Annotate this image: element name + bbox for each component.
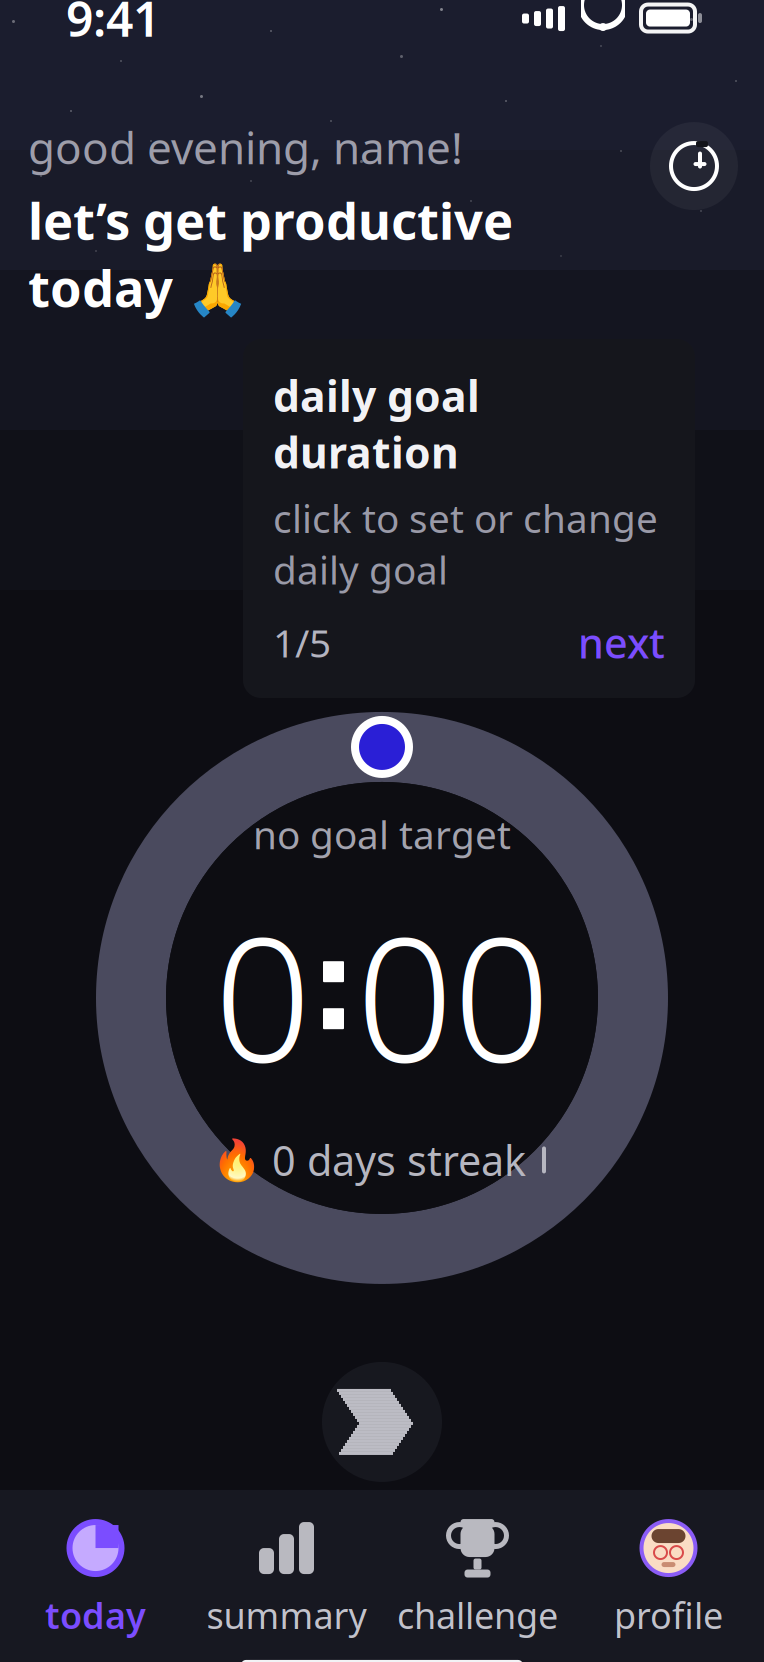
staticText: 9:41 xyxy=(66,0,160,50)
staticText: good evening, name! xyxy=(28,118,463,176)
button[interactable]: profile xyxy=(573,1514,764,1642)
staticText: challenge xyxy=(397,1591,558,1639)
button[interactable]: next xyxy=(578,615,665,670)
staticText: 00 xyxy=(356,882,550,1108)
staticText: next xyxy=(578,615,665,670)
staticText: let’s get productive today 🙏 xyxy=(28,186,513,321)
staticText: no goal target xyxy=(253,808,511,860)
staticText: today xyxy=(45,1591,146,1639)
button[interactable]: Set daily goal duration xyxy=(650,122,738,210)
button[interactable]: 🔥 xyxy=(202,1126,562,1193)
staticText: profile xyxy=(614,1591,723,1639)
staticText: click to set or change daily goal xyxy=(273,492,658,595)
staticText: 0 days streak xyxy=(272,1132,526,1187)
staticText: summary xyxy=(206,1591,366,1639)
button[interactable]: summary xyxy=(191,1514,382,1642)
button[interactable]: challenge xyxy=(382,1514,573,1642)
staticText: 0 xyxy=(214,882,311,1108)
button[interactable]: today xyxy=(0,1514,191,1642)
staticText: daily goal duration xyxy=(273,367,480,480)
staticText: 1/5 xyxy=(273,617,331,668)
button[interactable]: Start timer xyxy=(322,1362,442,1482)
staticText: 🔥 xyxy=(212,1137,262,1183)
